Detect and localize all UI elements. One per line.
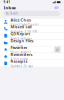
button[interactable]: Favorites bbox=[0, 46, 64, 53]
staticText: Search bbox=[10, 12, 18, 15]
staticText: Yesterday, 4:08 PM bbox=[10, 30, 36, 33]
button[interactable]: Missed call bbox=[0, 25, 64, 32]
button[interactable]: Q3 Report bbox=[0, 32, 64, 39]
staticText: Receipts bbox=[10, 59, 27, 64]
staticText: Photo attached bbox=[10, 51, 31, 54]
staticText: Inbox bbox=[4, 5, 16, 10]
staticText: Favorites bbox=[10, 45, 27, 50]
staticText: Project kickoff notes bbox=[10, 23, 38, 26]
staticText: 12 items bbox=[10, 44, 22, 47]
button[interactable]: Edit bbox=[53, 6, 60, 9]
staticText: Edit bbox=[54, 6, 59, 9]
button[interactable]: Alice Chen bbox=[0, 19, 64, 25]
staticText: Missed call bbox=[10, 24, 31, 29]
button[interactable]: Receipts bbox=[0, 60, 64, 67]
staticText: Shared with you bbox=[10, 37, 32, 40]
staticText: Alice Chen bbox=[10, 17, 31, 22]
staticText: 3 due today bbox=[10, 57, 27, 61]
staticText: Design Files bbox=[10, 38, 33, 43]
button[interactable]: Design Files bbox=[0, 39, 64, 46]
button[interactable]: Reminders bbox=[0, 53, 64, 60]
staticText: Reminders bbox=[10, 52, 32, 57]
staticText: 9:41 bbox=[4, 0, 11, 4]
staticText: Q3 Report bbox=[10, 31, 30, 36]
staticText: Updated 2h ago bbox=[10, 64, 33, 68]
